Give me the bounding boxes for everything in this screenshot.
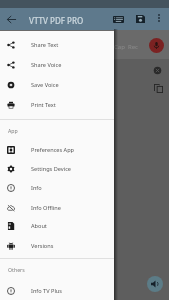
button[interactable]: Settings Device — [0, 159, 114, 179]
staticText: Others — [8, 266, 25, 273]
button[interactable]: Volume — [147, 276, 163, 292]
button[interactable]: Back — [0, 8, 22, 30]
button[interactable]: Share Text — [0, 35, 114, 55]
staticText: Preferences App — [31, 146, 75, 154]
staticText: Cap Rec — [114, 43, 138, 51]
staticText: Share Voice — [31, 61, 62, 69]
button[interactable]: Versions — [0, 236, 114, 256]
staticText: Info Offline — [31, 204, 61, 212]
button[interactable]: Save Voice — [0, 75, 114, 95]
button[interactable]: Save — [129, 8, 151, 30]
staticText: VTTV PDF PRO — [29, 15, 84, 26]
staticText: About — [31, 222, 47, 230]
staticText: Info — [31, 184, 42, 192]
staticText: Info TV Plus — [31, 287, 63, 295]
staticText: Print Text — [31, 101, 56, 109]
staticText: Settings Device — [31, 165, 71, 173]
button[interactable]: More options — [149, 8, 169, 28]
staticText: Share Text — [31, 41, 59, 49]
button[interactable]: Preferences App — [0, 140, 114, 160]
button[interactable]: Info — [0, 178, 114, 198]
button[interactable]: Info TV Plus — [0, 281, 114, 300]
button[interactable]: About — [0, 216, 114, 236]
button[interactable]: Clear — [152, 65, 163, 76]
button[interactable]: Keyboard — [107, 8, 129, 30]
staticText: Versions — [31, 242, 54, 250]
staticText: App — [8, 127, 18, 134]
staticText: Save Voice — [31, 81, 59, 89]
button[interactable]: Info Offline — [0, 198, 114, 218]
button[interactable]: Print Text — [0, 95, 114, 115]
button[interactable]: Record — [149, 38, 164, 53]
button[interactable]: Copy — [152, 82, 164, 94]
button[interactable]: Share Voice — [0, 55, 114, 75]
